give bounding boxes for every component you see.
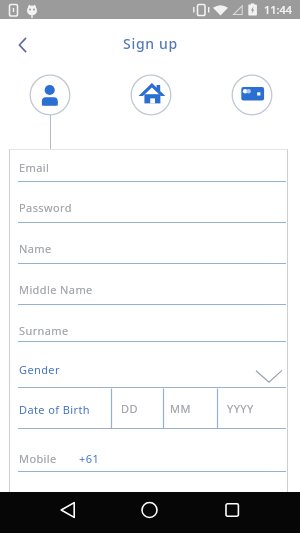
button[interactable] <box>10 305 287 345</box>
staticText: Email <box>19 160 50 175</box>
button[interactable] <box>131 75 171 115</box>
staticText: Name <box>19 241 52 256</box>
staticText: Middle Name <box>19 282 93 297</box>
staticText: Date of Birth <box>19 402 91 417</box>
button[interactable] <box>10 227 287 267</box>
button[interactable] <box>10 435 287 475</box>
button[interactable] <box>211 492 253 533</box>
button[interactable] <box>10 145 287 185</box>
staticText: YYYY <box>227 401 254 416</box>
staticText: Mobile <box>19 451 57 466</box>
button[interactable] <box>10 351 287 391</box>
button[interactable] <box>129 492 171 533</box>
button[interactable] <box>10 32 36 58</box>
button[interactable] <box>10 268 287 308</box>
staticText: MM <box>170 401 191 416</box>
staticText: Gender <box>19 362 60 377</box>
button[interactable] <box>30 75 70 115</box>
staticText: +61 <box>79 451 100 466</box>
button[interactable] <box>10 186 287 226</box>
staticText: 11:44 <box>264 2 293 17</box>
button[interactable] <box>10 392 287 432</box>
staticText: DD <box>121 401 138 416</box>
staticText: Sign up <box>123 34 178 53</box>
button[interactable] <box>232 75 272 115</box>
staticText: Surname <box>19 323 69 338</box>
staticText: Password <box>19 200 72 215</box>
button[interactable] <box>47 492 89 533</box>
